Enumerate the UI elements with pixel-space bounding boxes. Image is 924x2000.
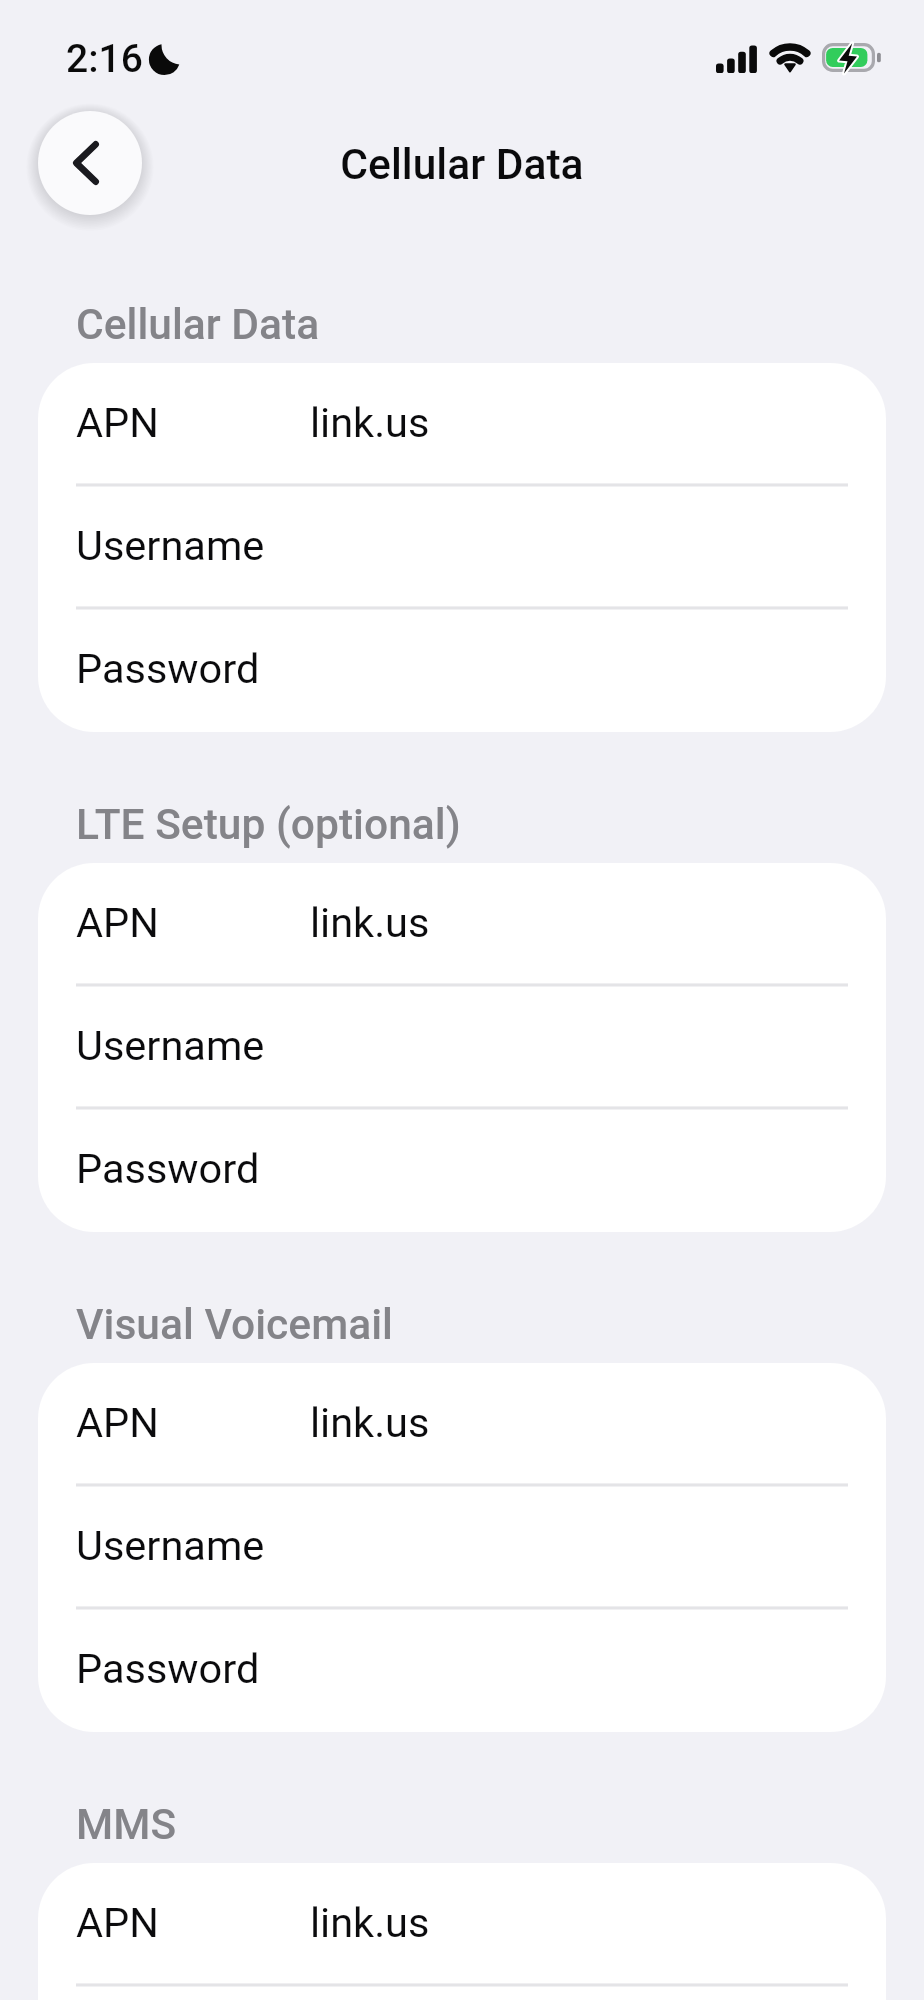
staticText: link.us: [310, 398, 430, 447]
staticText: Visual Voicemail: [76, 1300, 393, 1350]
staticText: APN: [76, 898, 159, 947]
staticText: MMS: [76, 1800, 177, 1850]
button[interactable]: Username: [38, 486, 886, 609]
button[interactable]: Password: [38, 1109, 886, 1232]
staticText: Password: [76, 644, 260, 693]
staticText: APN: [76, 398, 159, 447]
button[interactable]: Username: [38, 1486, 886, 1609]
button[interactable]: Back: [38, 111, 142, 215]
button[interactable]: APN: [38, 1363, 886, 1486]
button[interactable]: Username: [38, 1986, 886, 2000]
staticText: link.us: [310, 898, 430, 947]
button[interactable]: Password: [38, 1609, 886, 1732]
button[interactable]: Password: [38, 609, 886, 732]
staticText: APN: [76, 1898, 159, 1947]
button[interactable]: Username: [38, 986, 886, 1109]
staticText: LTE Setup (optional): [76, 800, 461, 850]
button[interactable]: APN: [38, 363, 886, 486]
staticText: Username: [76, 1021, 265, 1070]
staticText: Password: [76, 1144, 260, 1193]
staticText: Cellular Data: [76, 300, 320, 350]
staticText: Password: [76, 1644, 260, 1693]
button[interactable]: APN: [38, 1863, 886, 1986]
staticText: link.us: [310, 1398, 430, 1447]
staticText: Username: [76, 1521, 265, 1570]
staticText: 2:16: [66, 36, 143, 82]
staticText: link.us: [310, 1898, 430, 1947]
staticText: APN: [76, 1398, 159, 1447]
button[interactable]: APN: [38, 863, 886, 986]
staticText: Cellular Data: [340, 140, 584, 190]
staticText: Username: [76, 521, 265, 570]
